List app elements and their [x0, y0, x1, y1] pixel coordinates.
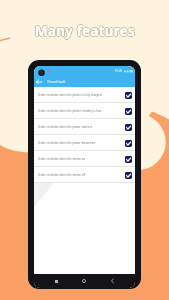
button[interactable]: Home	[79, 276, 89, 286]
staticText: Many features	[35, 21, 135, 39]
button[interactable]: Back	[107, 276, 117, 286]
staticText: Many features	[34, 22, 134, 40]
staticText: Many features	[35, 22, 135, 40]
staticText: Many features	[35, 22, 135, 40]
button[interactable]: Order reminder when the power disconnect	[34, 135, 135, 151]
staticText: Order reminder when the power disconnect	[38, 141, 125, 145]
button[interactable]: Order reminder when the phone is fully c…	[34, 87, 135, 103]
button[interactable]: Order reminder when the phone's battery …	[34, 103, 135, 119]
button[interactable]: Recent apps	[51, 276, 61, 286]
staticText: Timed task	[47, 79, 66, 84]
button[interactable]: Order reminder when the screen on	[34, 151, 135, 167]
staticText: Order reminder when the phone's battery …	[38, 109, 125, 113]
staticText: Order reminder when the screen on	[38, 157, 125, 161]
staticText: 10:28	[115, 69, 123, 73]
button[interactable]: Back	[34, 77, 135, 87]
staticText: Many features	[35, 22, 135, 40]
staticText: Order reminder when the phone is fully c…	[38, 93, 125, 97]
staticText: Many features	[35, 23, 135, 41]
staticText: Order reminder when the power connect	[38, 125, 125, 129]
other: Back	[36, 80, 42, 84]
staticText: Many features	[35, 22, 135, 40]
button[interactable]: Order reminder when the screen off	[34, 167, 135, 183]
button[interactable]: Order reminder when the power connect	[34, 119, 135, 135]
staticText: Order reminder when the screen off	[38, 173, 125, 177]
staticText: Many features	[35, 22, 135, 40]
staticText: Many features	[36, 22, 136, 40]
